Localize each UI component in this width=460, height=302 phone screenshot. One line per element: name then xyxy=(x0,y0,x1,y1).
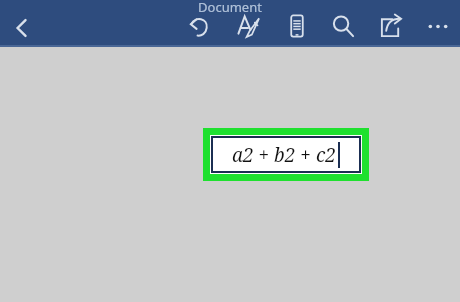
button[interactable]: Undo xyxy=(182,9,216,43)
button[interactable]: Share xyxy=(374,9,408,43)
button[interactable]: Mobile view xyxy=(280,9,314,43)
button[interactable]: Search xyxy=(326,9,360,43)
staticText: Document xyxy=(198,0,262,16)
staticText: a2 + b2 + c2 xyxy=(232,142,336,168)
button[interactable]: a2 + b2 + c2 xyxy=(203,128,369,181)
button[interactable]: Text formatting xyxy=(232,9,266,43)
button[interactable]: Back xyxy=(4,10,40,46)
button[interactable]: More options xyxy=(421,9,455,43)
